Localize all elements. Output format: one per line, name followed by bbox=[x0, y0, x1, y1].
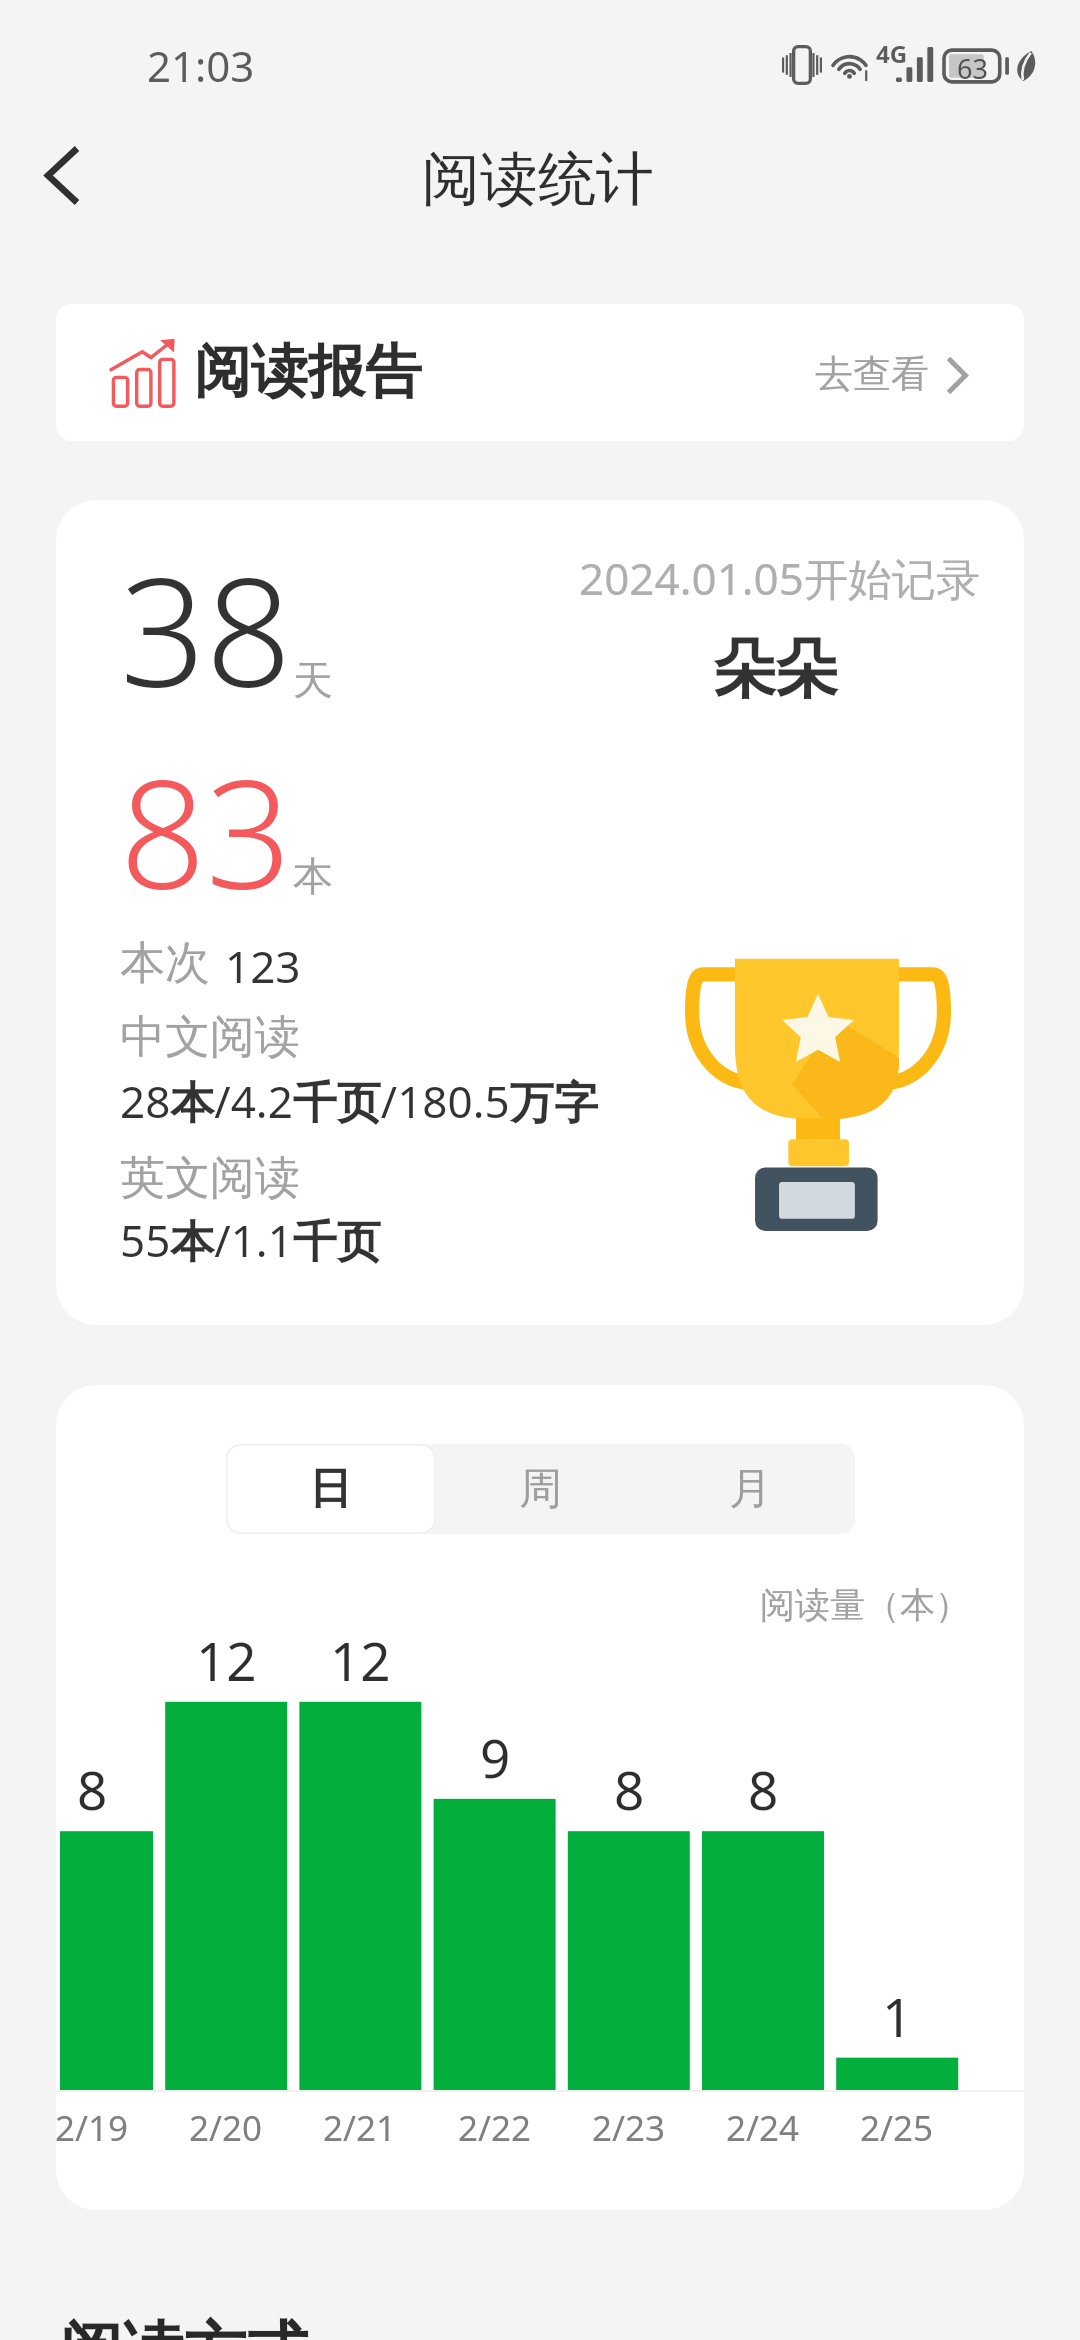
staticText: 8 bbox=[77, 1753, 108, 1825]
button[interactable]: 38 bbox=[56, 500, 1024, 1325]
staticText: 2/19 bbox=[56, 2104, 129, 2152]
staticText: 8 bbox=[748, 1753, 779, 1825]
staticText: 英文阅读 bbox=[120, 1150, 300, 1207]
staticText: 阅读量（本） bbox=[760, 1583, 970, 1627]
staticText: 本次 bbox=[120, 935, 210, 992]
staticText: 阅读方式 bbox=[60, 2312, 308, 2340]
staticText: 中文阅读 bbox=[120, 1009, 300, 1066]
staticText: 38 bbox=[120, 527, 292, 731]
staticText: 去查看 bbox=[815, 350, 929, 398]
staticText: 1 bbox=[882, 1980, 913, 2052]
staticText: 月 bbox=[729, 1462, 772, 1516]
button[interactable]: 周 bbox=[435, 1444, 645, 1534]
staticText: 21:03 bbox=[147, 37, 255, 94]
button[interactable]: Back bbox=[14, 128, 110, 224]
staticText: 83 bbox=[120, 729, 292, 933]
staticText: 55本/1.1千页 bbox=[120, 1210, 381, 1270]
staticText: 2/25 bbox=[860, 2104, 934, 2152]
staticText: 12 bbox=[196, 1624, 257, 1696]
button[interactable]: 日 bbox=[226, 1444, 435, 1534]
staticText: 阅读统计 bbox=[422, 143, 654, 216]
staticText: 日 bbox=[309, 1462, 352, 1516]
staticText: 4G bbox=[876, 37, 908, 70]
staticText: 28本/4.2千页/180.5万字 bbox=[120, 1071, 598, 1131]
staticText: 8 bbox=[614, 1753, 645, 1825]
staticText: 阅读报告 bbox=[194, 336, 422, 408]
staticText: 朵朵 bbox=[713, 630, 837, 708]
staticText: 9 bbox=[480, 1721, 511, 1793]
staticText: 2/20 bbox=[189, 2104, 263, 2152]
staticText: 12 bbox=[330, 1624, 391, 1696]
staticText: 63 bbox=[957, 50, 988, 87]
button[interactable]: 月 bbox=[645, 1444, 855, 1534]
staticText: 天 bbox=[293, 655, 333, 705]
staticText: 2/21 bbox=[323, 2104, 397, 2152]
staticText: 本 bbox=[293, 851, 333, 901]
staticText: 2/23 bbox=[592, 2104, 666, 2152]
staticText: 2/22 bbox=[458, 2104, 532, 2152]
staticText: 周 bbox=[519, 1462, 562, 1516]
staticText: 2024.01.05开始记录 bbox=[579, 548, 980, 608]
button[interactable]: 阅读报告 bbox=[56, 304, 1024, 441]
staticText: 123 bbox=[225, 936, 301, 996]
staticText: 2/24 bbox=[726, 2104, 800, 2152]
